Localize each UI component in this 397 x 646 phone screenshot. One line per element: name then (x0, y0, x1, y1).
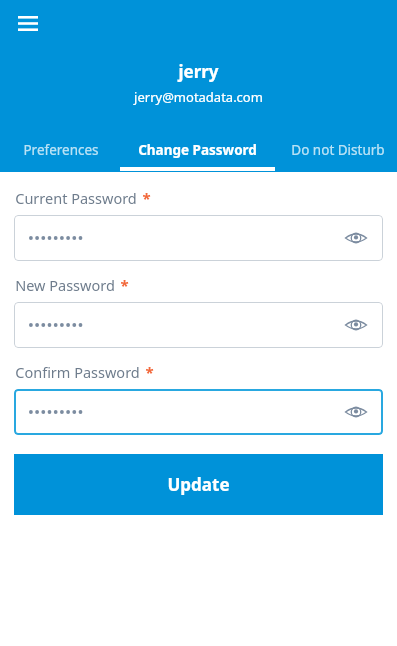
button[interactable]: Do not Disturb (275, 131, 397, 168)
button[interactable]: Show password (14, 302, 383, 348)
staticText: jerry@motadata.com (134, 88, 263, 106)
button[interactable]: Open navigation menu (10, 8, 46, 38)
staticText: Do not Disturb (291, 141, 385, 159)
button[interactable]: Show password (341, 223, 371, 253)
staticText: jerry (178, 60, 219, 83)
button[interactable]: Show password (341, 397, 371, 427)
button[interactable]: Show password (341, 310, 371, 340)
staticText: Current Password (15, 188, 137, 208)
button[interactable]: Show password (14, 215, 383, 261)
button[interactable]: Preferences (0, 131, 122, 168)
staticText: Change Password (138, 141, 257, 159)
staticText: Update (167, 473, 230, 496)
staticText: * (142, 188, 151, 208)
staticText: Preferences (23, 141, 99, 159)
button[interactable]: Change Password (120, 131, 275, 168)
staticText: New Password (15, 275, 115, 295)
staticText: Confirm Password (15, 362, 140, 382)
staticText: * (145, 362, 154, 382)
staticText: * (120, 275, 129, 295)
button[interactable]: Show password (14, 389, 383, 435)
button[interactable]: Update (14, 454, 383, 515)
